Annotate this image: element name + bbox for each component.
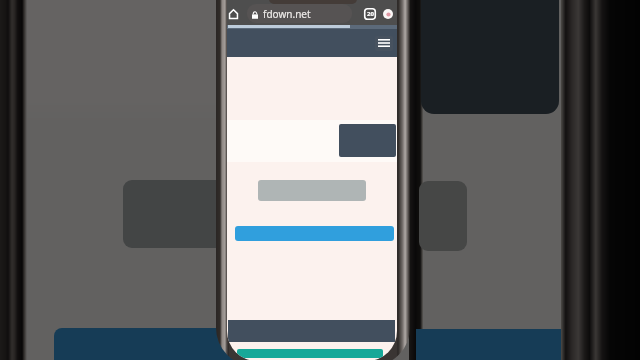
button[interactable]: Home: [227, 4, 240, 24]
button[interactable]: [339, 124, 396, 157]
button[interactable]: [247, 4, 352, 23]
staticText: fdown.net: [263, 7, 311, 21]
button[interactable]: [235, 226, 394, 241]
staticText: 20: [367, 10, 374, 18]
button[interactable]: Account: [379, 4, 397, 23]
button[interactable]: Open navigation menu: [375, 36, 393, 51]
button[interactable]: [258, 180, 366, 201]
button[interactable]: Tabs: [360, 4, 380, 23]
